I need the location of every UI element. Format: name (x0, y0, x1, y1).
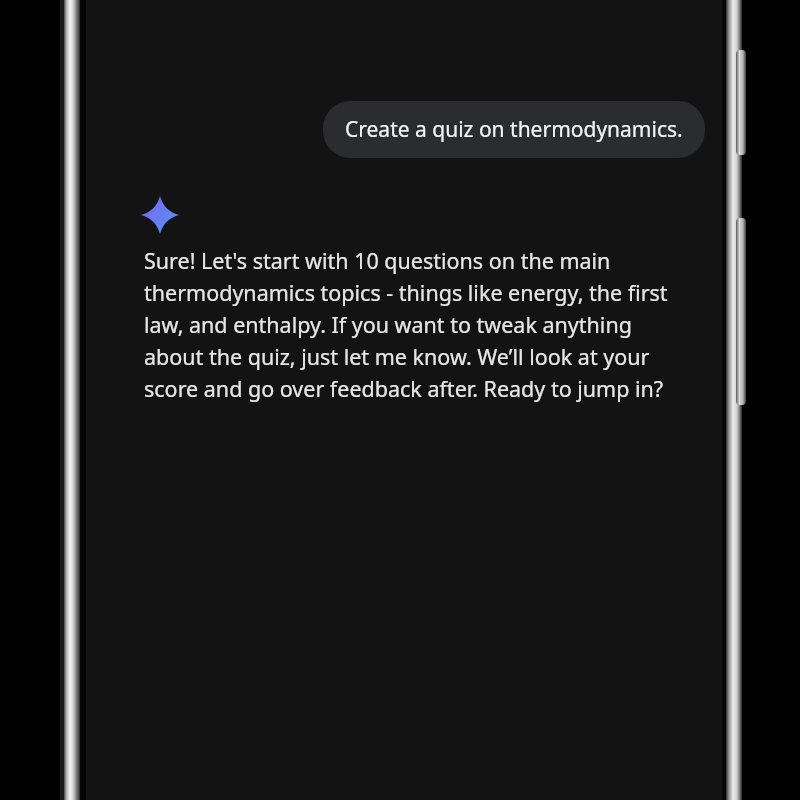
button[interactable]: Create a quiz on thermodynamics. (323, 101, 705, 158)
staticText: Create a quiz on thermodynamics. (345, 115, 683, 144)
other: Gemini (141, 196, 179, 234)
staticText: Sure! Let's start with 10 questions on t… (144, 246, 680, 403)
